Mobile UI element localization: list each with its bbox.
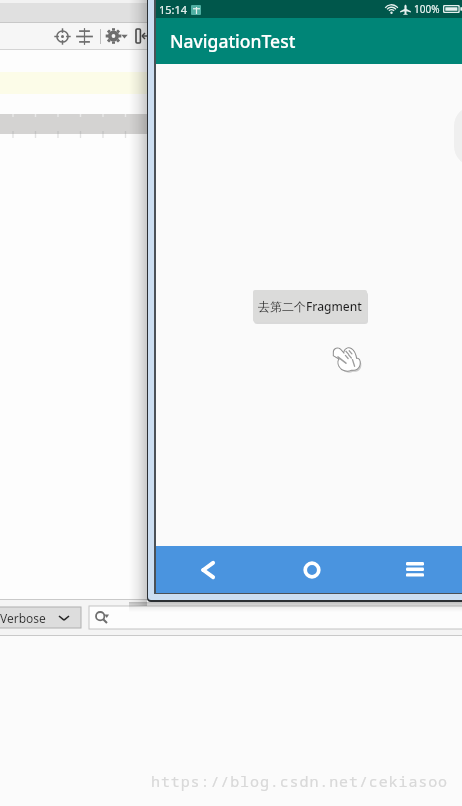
button[interactable]: 去第二个Fragment (253, 290, 367, 322)
staticText: NavigationTest (170, 29, 296, 53)
button[interactable]: Back (156, 546, 260, 593)
button[interactable]: Recent apps (363, 546, 462, 593)
staticText: 100% (414, 2, 440, 16)
button[interactable]: Distribute vertically (76, 28, 93, 45)
staticText: https://blog.csdn.net/cekiasoo (151, 771, 449, 791)
button[interactable] (89, 606, 462, 629)
button[interactable]: Collapse panel (134, 27, 148, 45)
button[interactable]: Verbose (0, 607, 81, 628)
staticText: Verbose (0, 610, 46, 626)
button[interactable]: Center selection (54, 28, 71, 45)
button[interactable]: Settings (105, 27, 129, 45)
staticText: 15:14 (159, 2, 188, 17)
button[interactable]: Home (260, 546, 363, 593)
staticText: 去第二个Fragment (258, 298, 362, 314)
